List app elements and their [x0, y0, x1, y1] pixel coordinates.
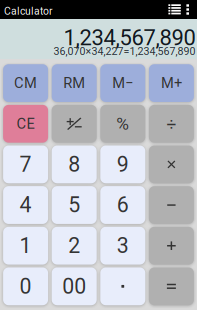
staticText: ÷: [166, 114, 176, 134]
button[interactable]: 6: [100, 186, 145, 224]
staticText: M+: [161, 74, 182, 92]
button[interactable]: More options: [186, 4, 189, 15]
staticText: 2: [68, 233, 80, 258]
staticText: RM: [63, 74, 85, 92]
button[interactable]: CM: [3, 64, 48, 102]
button[interactable]: 7: [3, 145, 48, 183]
button[interactable]: 9: [100, 145, 145, 183]
button[interactable]: CE: [3, 105, 48, 143]
button[interactable]: 2: [52, 227, 97, 265]
button[interactable]: M−: [100, 64, 145, 102]
staticText: %: [116, 114, 129, 134]
button[interactable]: 3: [100, 227, 145, 265]
staticText: 7: [20, 152, 32, 177]
staticText: 6: [117, 193, 129, 218]
button[interactable]: Decimal point: [100, 267, 145, 305]
staticText: 1: [20, 233, 32, 258]
button[interactable]: 4: [3, 186, 48, 224]
button[interactable]: 1: [3, 227, 48, 265]
button[interactable]: History: [168, 4, 181, 15]
staticText: 8: [68, 152, 80, 177]
button[interactable]: 0: [3, 267, 48, 305]
staticText: CM: [14, 74, 37, 92]
button[interactable]: ÷: [149, 105, 194, 143]
staticText: 4: [20, 193, 32, 218]
button[interactable]: Plus: [149, 227, 194, 265]
button[interactable]: 8: [52, 145, 97, 183]
button[interactable]: Multiply: [149, 145, 194, 183]
staticText: 3: [117, 233, 129, 258]
button[interactable]: RM: [52, 64, 97, 102]
button[interactable]: %: [100, 105, 145, 143]
staticText: CE: [17, 115, 35, 132]
button[interactable]: Equals: [149, 267, 194, 305]
staticText: 5: [68, 193, 80, 218]
button[interactable]: Minus: [149, 186, 194, 224]
staticText: Calculator: [4, 5, 53, 17]
button[interactable]: 00: [52, 267, 97, 305]
staticText: M−: [112, 74, 133, 92]
button[interactable]: 5: [52, 186, 97, 224]
staticText: 0: [20, 274, 32, 299]
staticText: 9: [117, 152, 129, 177]
button[interactable]: Plus minus: [52, 105, 97, 143]
button[interactable]: M+: [149, 64, 194, 102]
staticText: 1,234,567,890: [63, 25, 195, 50]
staticText: 00: [62, 274, 86, 299]
staticText: 36,070×34,227=1,234,567,890: [53, 45, 195, 57]
